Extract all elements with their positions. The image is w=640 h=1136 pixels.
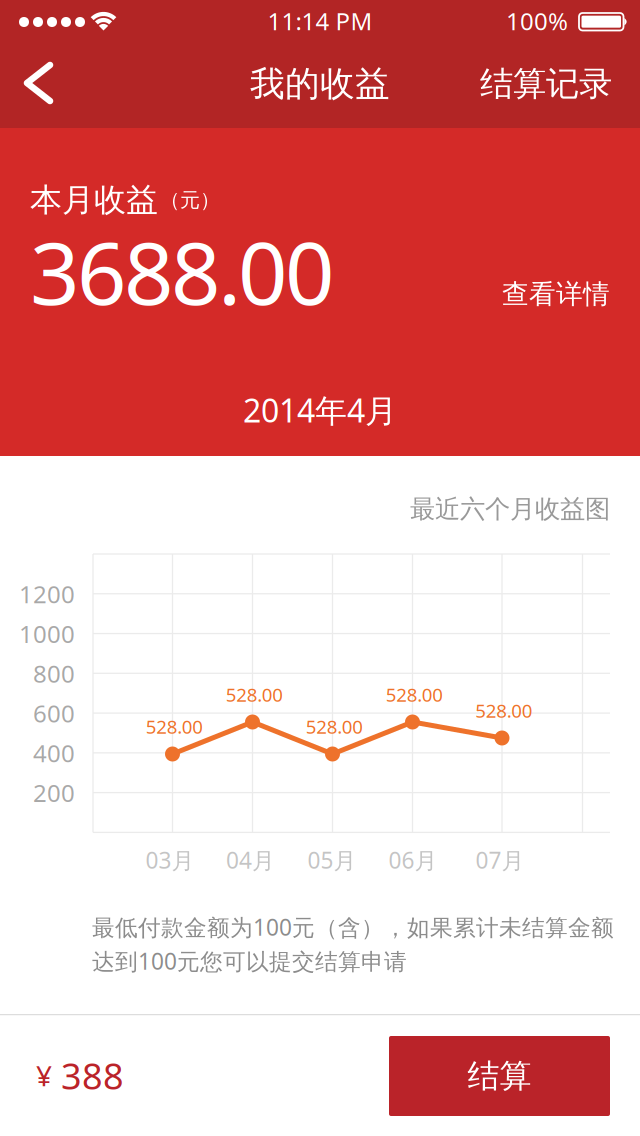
staticText: 528.00 [475,698,533,723]
button[interactable]: 结算 [389,1036,610,1116]
staticText: 结算记录 [480,63,612,104]
staticText: 1000 [19,618,75,650]
staticText: 528.00 [146,714,203,739]
staticText: （元） [160,188,220,212]
staticText: 结算 [467,1056,531,1096]
staticText: 07月 [475,845,524,875]
staticText: 2014年4月 [243,389,397,431]
button[interactable] [12,55,68,111]
staticText: 800 [33,657,75,689]
staticText: 1200 [19,578,75,610]
staticText: 06月 [388,845,437,875]
button[interactable]: 结算记录 [432,54,612,114]
staticText: 388 [61,1052,124,1099]
staticText: 03月 [145,845,194,875]
staticText: 528.00 [226,682,283,707]
staticText: 我的收益 [250,63,390,105]
staticText: 11:14 PM [267,5,372,37]
staticText: 100% [506,5,568,37]
staticText: 查看详情 [502,278,610,310]
staticText: 400 [33,737,75,769]
staticText: 本月收益 [30,180,158,220]
staticText: 200 [33,777,75,809]
button[interactable]: 查看详情 [450,266,610,322]
staticText: 04月 [226,845,275,875]
staticText: 528.00 [306,714,363,739]
staticText: 最低付款金额为100元（含），如果累计未结算金额 [92,912,614,942]
staticText: 达到100元您可以提交结算申请 [92,946,407,976]
staticText: 600 [33,697,75,729]
staticText: 最近六个月收益图 [410,493,610,524]
staticText: 3688.00 [30,213,335,329]
staticText: 528.00 [386,682,443,707]
staticText: ¥ [36,1057,52,1094]
staticText: 05月 [307,845,356,875]
